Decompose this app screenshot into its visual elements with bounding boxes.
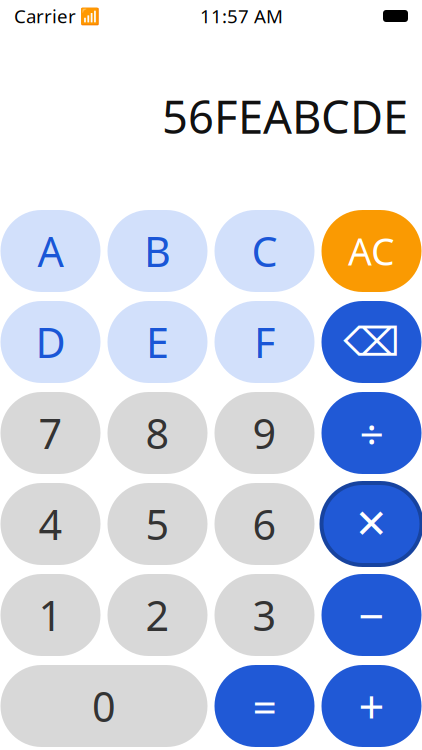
button[interactable]: A [0, 210, 100, 292]
button[interactable]: 1 [0, 574, 100, 656]
staticText: 3 [252, 588, 276, 642]
staticText: B [144, 224, 171, 278]
button[interactable]: Delete [321, 301, 421, 383]
staticText: − [358, 585, 384, 645]
staticText: ✕ [354, 501, 388, 547]
button[interactable]: ÷ [321, 392, 421, 474]
button[interactable]: 6 [214, 483, 314, 565]
staticText: + [358, 676, 384, 736]
staticText: E [146, 315, 169, 369]
staticText: 1 [38, 588, 62, 642]
staticText: 9 [252, 406, 276, 460]
staticText: F [254, 315, 275, 369]
staticText: D [35, 315, 65, 369]
button[interactable]: = [214, 665, 314, 747]
staticText: 4 [38, 497, 62, 551]
button[interactable]: E [107, 301, 207, 383]
staticText: C [251, 224, 277, 278]
staticText: 6 [252, 497, 276, 551]
button[interactable]: 3 [214, 574, 314, 656]
staticText: 11:57 AM [200, 4, 283, 28]
button[interactable]: F [214, 301, 314, 383]
button[interactable]: 5 [107, 483, 207, 565]
button[interactable]: ✕ [321, 483, 421, 565]
button[interactable]: 8 [107, 392, 207, 474]
button[interactable]: 4 [0, 483, 100, 565]
button[interactable]: D [0, 301, 100, 383]
button[interactable]: C [214, 210, 314, 292]
button[interactable]: B [107, 210, 207, 292]
staticText: 8 [145, 406, 169, 460]
staticText: 56FEABCDE [162, 86, 408, 146]
button[interactable]: 2 [107, 574, 207, 656]
button[interactable]: + [321, 665, 421, 747]
staticText: Carrier [14, 4, 76, 28]
staticText: = [252, 678, 276, 734]
staticText: 7 [38, 406, 62, 460]
staticText: ⌫ [343, 319, 400, 365]
button[interactable]: 9 [214, 392, 314, 474]
staticText: 📶 [76, 5, 100, 27]
button[interactable]: AC [321, 210, 421, 292]
button[interactable]: 7 [0, 392, 100, 474]
button[interactable]: 0 [0, 665, 207, 747]
staticText: ÷ [359, 405, 383, 461]
staticText: A [37, 224, 63, 278]
staticText: 5 [145, 497, 169, 551]
staticText: 0 [92, 679, 116, 733]
button[interactable]: − [321, 574, 421, 656]
staticText: 2 [145, 588, 169, 642]
staticText: AC [348, 226, 395, 276]
